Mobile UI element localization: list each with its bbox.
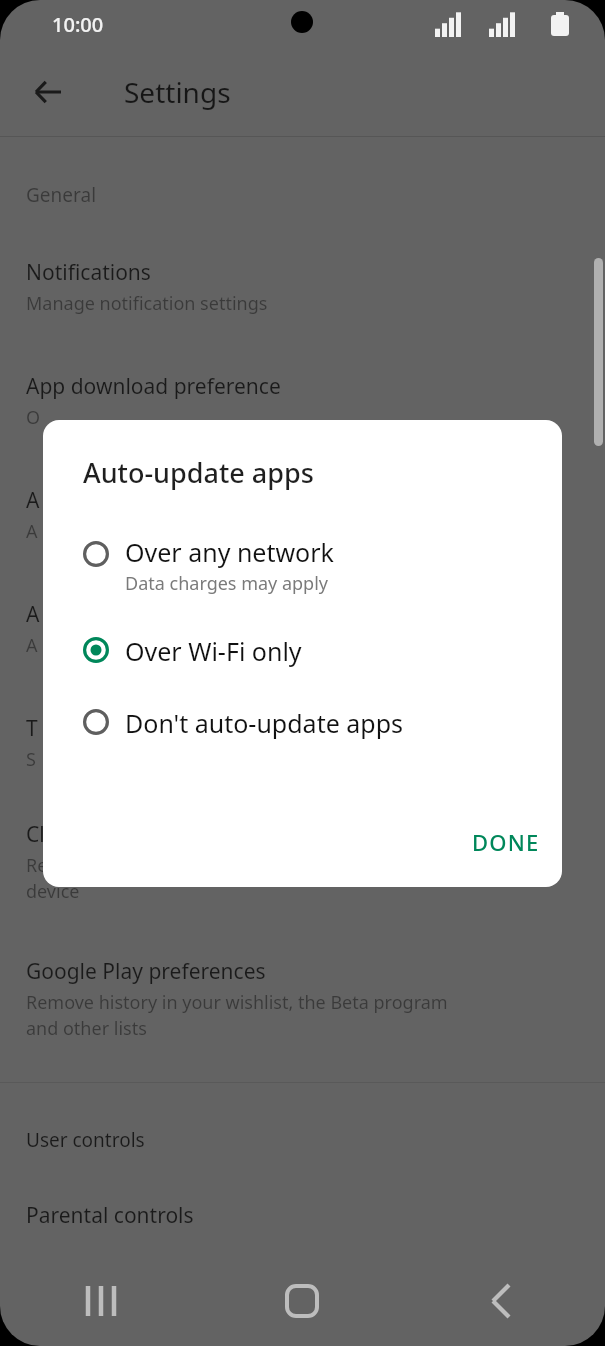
button[interactable]: DONE <box>450 815 562 869</box>
button[interactable]: User controls <box>0 1127 605 1153</box>
staticText: O <box>26 405 41 430</box>
staticText: Settings <box>124 73 231 111</box>
staticText: 10:00 <box>52 11 104 38</box>
button[interactable]: Over Wi-Fi only <box>43 628 562 674</box>
staticText: Auto-update apps <box>83 454 314 491</box>
staticText: Remove history in your wishlist, the Bet… <box>26 990 448 1040</box>
staticText: Data charges may apply <box>125 571 329 596</box>
button[interactable]: Don't auto-update apps <box>43 700 562 746</box>
staticText: User controls <box>26 1127 145 1153</box>
staticText: Google Play preferences <box>26 957 266 986</box>
button[interactable]: Parental controls <box>0 1201 605 1230</box>
button[interactable]: Home <box>201 1256 403 1346</box>
staticText: Over Wi-Fi only <box>125 634 302 668</box>
staticText: A <box>26 600 40 629</box>
button[interactable]: Back <box>403 1256 605 1346</box>
staticText: A <box>26 486 40 515</box>
button[interactable]: Recents <box>0 1256 201 1346</box>
staticText: Parental controls <box>26 1201 194 1230</box>
button[interactable]: A <box>0 600 605 658</box>
staticText: Notifications <box>26 258 151 287</box>
button[interactable]: A <box>0 486 605 544</box>
button[interactable]: Back <box>22 66 74 118</box>
button[interactable]: App download preference <box>0 372 605 430</box>
staticText: General <box>26 182 97 208</box>
staticText: DONE <box>472 827 540 857</box>
staticText: App download preference <box>26 372 281 401</box>
staticText: Remove searches that you have performed … <box>26 853 471 903</box>
button[interactable]: Google Play preferences <box>0 957 605 1040</box>
button[interactable]: Clear local search history <box>0 820 605 903</box>
button[interactable]: Notifications <box>0 258 605 316</box>
staticText: T <box>26 714 38 743</box>
staticText: Clear local search history <box>26 820 272 849</box>
staticText: A <box>26 519 38 544</box>
button[interactable]: Over any network <box>43 529 562 602</box>
staticText: A <box>26 633 38 658</box>
staticText: S <box>26 747 36 772</box>
button[interactable]: T <box>0 714 605 772</box>
staticText: Don't auto-update apps <box>125 706 404 740</box>
staticText: Over any network <box>125 535 334 569</box>
staticText: Manage notification settings <box>26 291 268 316</box>
